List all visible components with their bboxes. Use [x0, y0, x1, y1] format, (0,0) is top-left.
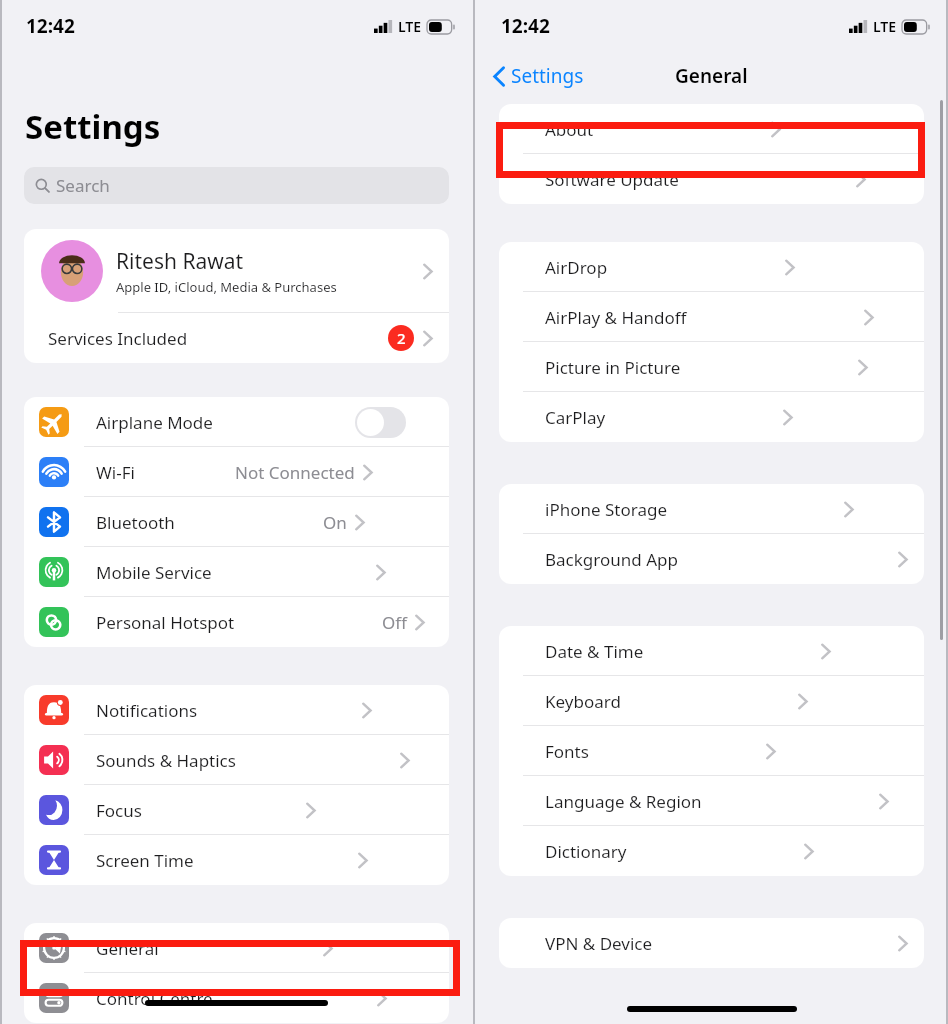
staticText: CarPlay [545, 406, 606, 429]
button[interactable]: Wi-Fi [24, 447, 449, 497]
button[interactable]: Airplane Mode [24, 397, 449, 447]
staticText: AirPlay & Handoff [545, 306, 687, 329]
button[interactable]: Services Included with Purchase [24, 313, 449, 363]
button[interactable]: About [499, 104, 924, 154]
button[interactable]: Sounds & Haptics [24, 735, 449, 785]
button[interactable]: Control Centre [24, 973, 449, 1023]
staticText: Apple ID, iCloud, Media & Purchases [116, 278, 337, 296]
button[interactable]: Settings [489, 59, 588, 93]
staticText: Off [382, 611, 407, 634]
button[interactable]: AirPlay & Handoff [499, 292, 924, 342]
staticText: Focus [96, 799, 142, 822]
staticText: Language & Region [545, 790, 702, 813]
button[interactable]: Software Update [499, 154, 924, 204]
button[interactable]: iPhone Storage [499, 484, 924, 534]
button[interactable]: Date & Time [499, 626, 924, 676]
staticText: LTE [873, 17, 897, 36]
staticText: Personal Hotspot [96, 611, 235, 634]
button[interactable]: Screen Time [24, 835, 449, 885]
button[interactable]: Search [24, 167, 449, 204]
button[interactable]: Notifications [24, 685, 449, 735]
button[interactable]: Picture in Picture [499, 342, 924, 392]
staticText: Mobile Service [96, 561, 212, 584]
staticText: Software Update [545, 168, 679, 191]
button[interactable]: Bluetooth [24, 497, 449, 547]
button[interactable]: Background App Refresh [499, 534, 924, 584]
staticText: Date & Time [545, 640, 644, 663]
staticText: VPN & Device Management [545, 932, 721, 955]
staticText: Background App Refresh [545, 548, 721, 571]
staticText: Settings [25, 104, 161, 149]
button[interactable]: Ritesh Rawat [24, 229, 449, 313]
staticText: 2 [397, 328, 406, 348]
button[interactable]: VPN & Device Management [499, 918, 924, 968]
staticText: 12:42 [501, 13, 550, 39]
staticText: Not Connected [235, 461, 355, 484]
staticText: General [675, 63, 748, 89]
button[interactable]: Dictionary [499, 826, 924, 876]
staticText: Airplane Mode [96, 411, 213, 434]
staticText: Picture in Picture [545, 356, 681, 379]
staticText: Bluetooth [96, 511, 175, 534]
staticText: iPhone Storage [545, 498, 667, 521]
staticText: Search [56, 174, 110, 197]
button[interactable]: Fonts [499, 726, 924, 776]
staticText: Sounds & Haptics [96, 749, 236, 772]
staticText: About [545, 118, 594, 141]
staticText: AirDrop [545, 256, 608, 279]
staticText: Dictionary [545, 840, 627, 863]
staticText: Notifications [96, 699, 198, 722]
staticText: Keyboard [545, 690, 621, 713]
button[interactable]: Mobile Service [24, 547, 449, 597]
button[interactable]: Language & Region [499, 776, 924, 826]
button[interactable]: Focus [24, 785, 449, 835]
staticText: Ritesh Rawat [116, 247, 244, 276]
staticText: Control Centre [96, 987, 213, 1010]
button[interactable]: General [24, 923, 449, 973]
staticText: General [96, 937, 159, 960]
button[interactable]: Personal Hotspot [24, 597, 449, 647]
staticText: Settings [511, 63, 584, 89]
button[interactable] [355, 407, 406, 438]
staticText: Screen Time [96, 849, 194, 872]
button[interactable]: CarPlay [499, 392, 924, 442]
staticText: Fonts [545, 740, 589, 763]
staticText: On [323, 511, 347, 534]
button[interactable]: Keyboard [499, 676, 924, 726]
button[interactable]: AirDrop [499, 242, 924, 292]
staticText: Services Included with Purchase [48, 327, 218, 350]
staticText: 12:42 [26, 13, 75, 39]
staticText: Wi-Fi [96, 461, 135, 484]
staticText: LTE [398, 17, 422, 36]
